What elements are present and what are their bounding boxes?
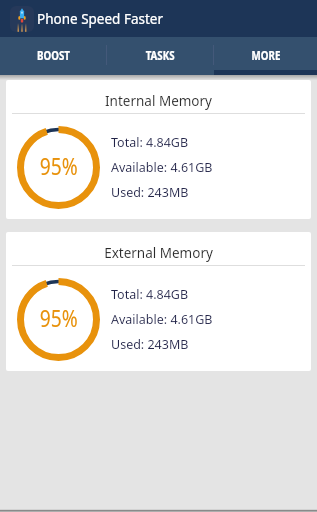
staticText: Available: 4.61GB xyxy=(111,159,213,176)
staticText: External Memory xyxy=(6,244,311,262)
staticText: Total: 4.84GB xyxy=(111,286,189,303)
staticText: Internal Memory xyxy=(6,92,311,110)
staticText: BOOST xyxy=(37,48,70,64)
button[interactable]: TASKS xyxy=(107,37,214,75)
button[interactable]: Internal Memory xyxy=(6,80,311,219)
staticText: Available: 4.61GB xyxy=(111,311,213,328)
staticText: Phone Speed Faster xyxy=(37,10,164,28)
staticText: 95% xyxy=(40,301,78,334)
staticText: Used: 243MB xyxy=(111,184,189,201)
other: App icon xyxy=(10,6,34,32)
staticText: 95% xyxy=(40,149,78,182)
staticText: Used: 243MB xyxy=(111,336,189,353)
staticText: Total: 4.84GB xyxy=(111,134,189,151)
button[interactable]: External Memory xyxy=(6,232,311,371)
button[interactable]: MORE xyxy=(214,37,317,75)
staticText: MORE xyxy=(252,48,280,64)
button[interactable]: BOOST xyxy=(0,37,107,75)
staticText: TASKS xyxy=(146,48,175,64)
